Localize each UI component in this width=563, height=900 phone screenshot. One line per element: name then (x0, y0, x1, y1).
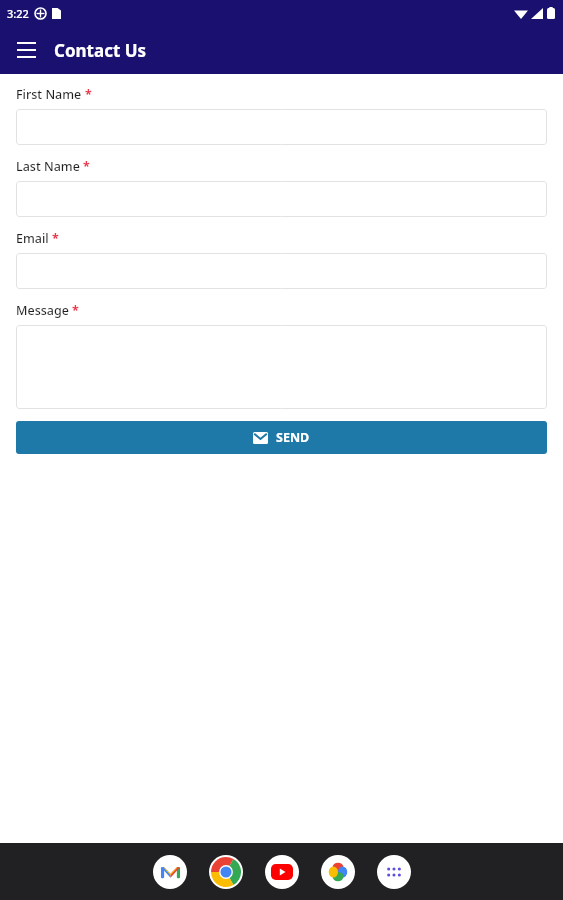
staticText: Last Name (16, 158, 80, 175)
button[interactable]: Email input field (16, 253, 547, 289)
button[interactable]: Chrome (209, 855, 243, 889)
button[interactable]: Google Photos (321, 855, 355, 889)
button[interactable]: Last Name input field (16, 181, 547, 217)
button[interactable]: Message input field (16, 325, 547, 409)
button[interactable]: First Name input field (16, 109, 547, 145)
button[interactable]: All apps (377, 855, 411, 889)
button[interactable]: SEND (16, 421, 547, 454)
staticText: 3:22 (7, 6, 29, 21)
staticText: * (52, 230, 59, 247)
staticText: First Name (16, 86, 82, 103)
button[interactable]: YouTube (265, 855, 299, 889)
staticText: * (72, 302, 79, 319)
staticText: SEND (276, 429, 310, 446)
button[interactable]: Open navigation menu (6, 30, 46, 70)
staticText: Email (16, 230, 49, 247)
staticText: Contact Us (54, 39, 147, 62)
button[interactable]: Gmail (153, 855, 187, 889)
staticText: * (85, 86, 92, 103)
staticText: Message (16, 302, 69, 319)
staticText: * (83, 158, 90, 175)
